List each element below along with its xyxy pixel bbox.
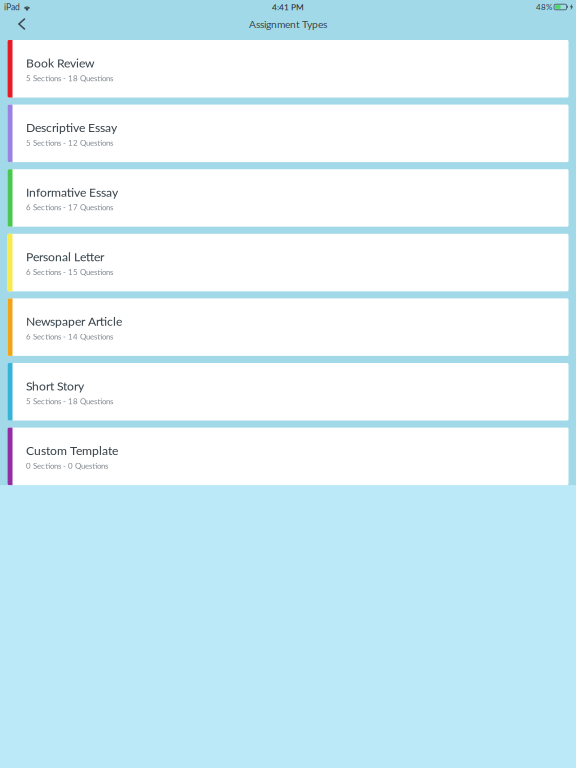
staticText: 6 Sections - 15 Questions [26, 267, 113, 277]
button[interactable]: Book Review [7, 40, 568, 97]
staticText: 5 Sections - 12 Questions [26, 138, 113, 147]
staticText: Descriptive Essay [26, 120, 117, 135]
staticText: Assignment Types [249, 18, 327, 30]
staticText: Book Review [26, 55, 95, 70]
staticText: 6 Sections - 17 Questions [26, 203, 113, 212]
staticText: 0 Sections - 0 Questions [26, 461, 108, 470]
button[interactable]: Short Story [7, 363, 568, 420]
staticText: Informative Essay [26, 185, 118, 199]
button[interactable]: Descriptive Essay [7, 105, 568, 162]
staticText: 4:41 PM [272, 2, 304, 12]
staticText: Newspaper Article [26, 314, 122, 328]
staticText: Personal Letter [26, 249, 104, 264]
button[interactable]: Custom Template [7, 428, 568, 485]
staticText: Short Story [26, 378, 84, 393]
staticText: 5 Sections - 18 Questions [26, 396, 113, 406]
staticText: 48% [536, 2, 552, 12]
staticText: Custom Template [26, 443, 118, 458]
staticText: 6 Sections - 14 Questions [26, 332, 113, 341]
button[interactable]: Personal Letter [7, 234, 568, 291]
button[interactable]: Newspaper Article [7, 298, 568, 356]
button[interactable]: Informative Essay [7, 169, 568, 227]
button[interactable]: Back [11, 14, 33, 38]
staticText: 5 Sections - 18 Questions [26, 73, 113, 83]
staticText: iPad [4, 2, 20, 12]
